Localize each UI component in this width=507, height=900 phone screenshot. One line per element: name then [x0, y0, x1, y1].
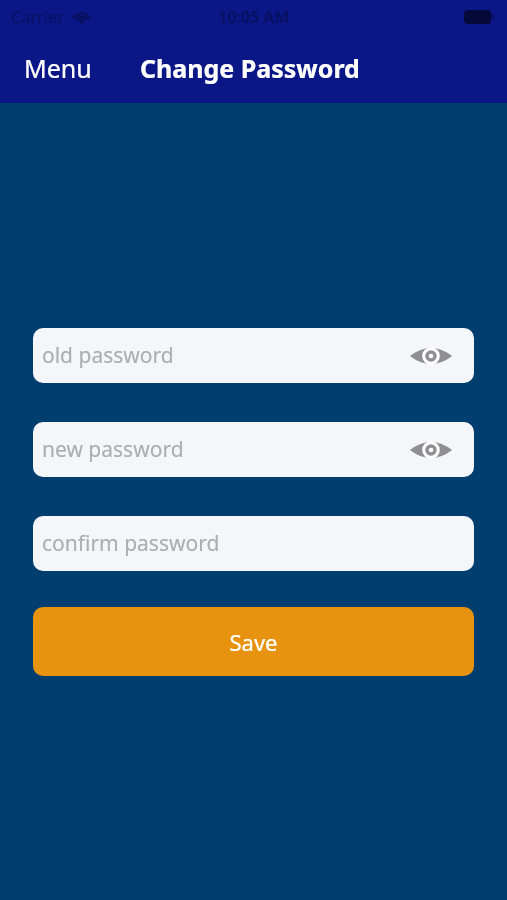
staticText: Save	[229, 627, 278, 657]
staticText: confirm password	[42, 529, 220, 558]
button[interactable]: Show password	[409, 433, 453, 467]
button[interactable]: Save	[33, 607, 474, 676]
staticText: 10:05 AM	[218, 6, 290, 28]
staticText: Change Password	[140, 51, 360, 85]
button[interactable]: Show password	[409, 339, 453, 373]
button[interactable]: old password	[33, 328, 474, 383]
button[interactable]: Menu	[14, 45, 102, 91]
staticText: Carrier	[11, 6, 65, 28]
staticText: new password	[42, 435, 184, 464]
staticText: Menu	[24, 51, 92, 85]
button[interactable]: new password	[33, 422, 474, 477]
button[interactable]: confirm password	[33, 516, 474, 571]
staticText: old password	[42, 341, 174, 370]
